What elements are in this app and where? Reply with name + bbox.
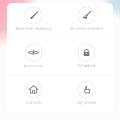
button[interactable]: One button elimination — [60, 3, 113, 37]
button[interactable]: Eye protection — [7, 37, 60, 75]
staticText: Put away lock — [78, 64, 95, 67]
button[interactable]: High sensitive — [60, 75, 113, 112]
staticText: Clear notes — [25, 101, 41, 104]
staticText: High sensitive — [76, 101, 96, 104]
button[interactable]: Clear notes — [7, 75, 60, 112]
button[interactable]: Put away lock — [60, 37, 113, 75]
staticText: Mouse/hover handwriting — [15, 27, 51, 30]
staticText: One button elimination — [69, 27, 103, 30]
button[interactable]: Mouse/hover handwriting — [7, 3, 60, 37]
staticText: Eye protection — [23, 64, 43, 67]
